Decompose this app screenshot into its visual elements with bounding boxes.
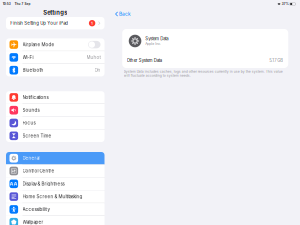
staticText: System Data	[145, 36, 168, 41]
button[interactable]: General	[6, 152, 104, 164]
staticText: 1	[91, 21, 93, 26]
button[interactable]: Control Centre	[6, 165, 104, 177]
staticText: Wallpaper	[22, 219, 43, 225]
staticText: Other System Data	[127, 58, 162, 63]
staticText: 5.17 GB	[269, 58, 283, 63]
staticText: Airplane Mode	[22, 42, 54, 47]
staticText: Bluetooth	[22, 67, 43, 73]
button[interactable]: AA	[6, 178, 104, 190]
staticText: Muhot	[86, 55, 100, 60]
button[interactable]: Screen Time	[6, 130, 104, 142]
staticText: Notifications	[22, 95, 48, 100]
staticText: Apple Inc.	[145, 42, 161, 46]
staticText: 37%	[282, 2, 289, 6]
staticText: Focus	[22, 120, 35, 126]
staticText: Wi-Fi	[22, 55, 33, 60]
staticText: Sounds	[22, 107, 39, 113]
button[interactable]: Wi-Fi	[6, 51, 104, 64]
staticText: General	[22, 155, 39, 161]
staticText: Finish Setting Up Your iPad	[10, 20, 68, 26]
button[interactable]: Wallpaper	[6, 216, 104, 225]
button[interactable]: Back	[113, 9, 132, 18]
staticText: System Data includes caches, logs and ot…	[124, 69, 283, 78]
button[interactable]: Finish Setting Up Your iPad	[6, 17, 104, 29]
button[interactable]: Airplane Mode	[6, 38, 104, 51]
staticText: Screen Time	[22, 133, 51, 138]
staticText: Home Screen & Multitasking	[22, 194, 82, 199]
staticText: Accessibility	[22, 207, 49, 212]
button[interactable]: Accessibility	[6, 203, 104, 216]
staticText: Back	[119, 11, 131, 17]
button[interactable]: Home Screen & Multitasking	[6, 190, 104, 203]
staticText: Control Centre	[22, 168, 54, 174]
staticText: AA	[10, 181, 18, 187]
staticText: Thu 7 Sep	[14, 2, 30, 6]
staticText: 10:53	[3, 2, 11, 6]
staticText: Display & Brightness	[22, 181, 64, 186]
button[interactable]: Sounds	[6, 104, 104, 116]
button[interactable]: Focus	[6, 117, 104, 129]
button[interactable]: Notifications	[6, 91, 104, 104]
staticText: On	[94, 67, 100, 73]
button[interactable]: Bluetooth	[6, 64, 104, 76]
staticText: Settings	[43, 9, 67, 16]
